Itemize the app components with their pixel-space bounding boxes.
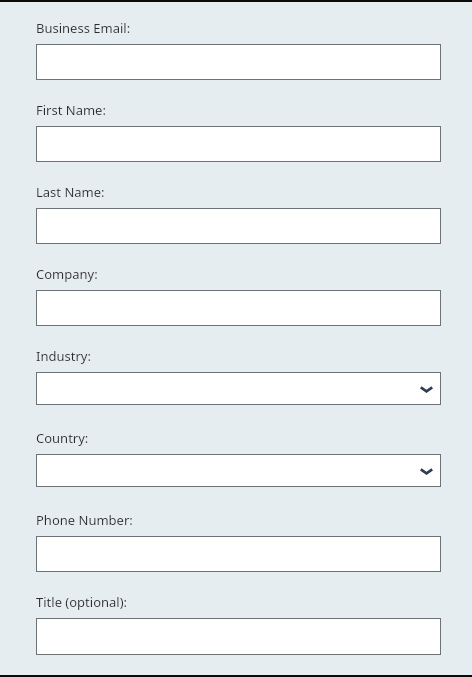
staticText: Company: — [36, 265, 98, 283]
staticText: Country: — [36, 429, 89, 447]
staticText: Industry: — [36, 347, 91, 365]
button[interactable] — [36, 126, 441, 162]
staticText: First Name: — [36, 101, 106, 119]
button[interactable] — [36, 208, 441, 244]
button[interactable] — [36, 618, 441, 655]
staticText: Phone Number: — [36, 511, 133, 529]
button[interactable] — [36, 536, 441, 572]
staticText: Title (optional): — [36, 593, 128, 611]
button[interactable]: Country: dropdown — [36, 454, 441, 487]
button[interactable] — [36, 44, 441, 80]
button[interactable]: Industry: dropdown — [36, 372, 441, 405]
staticText: Business Email: — [36, 19, 131, 37]
button[interactable] — [36, 290, 441, 326]
staticText: Last Name: — [36, 183, 105, 201]
